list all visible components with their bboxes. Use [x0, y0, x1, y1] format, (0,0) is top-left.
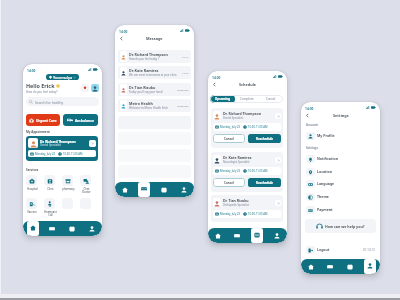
button[interactable]: Language [306, 179, 375, 188]
staticText: 10.00-11.00 AM [248, 212, 268, 216]
button[interactable]: Vaccine [26, 198, 37, 214]
staticText: Cancel [224, 181, 234, 185]
button[interactable]: Profile [174, 182, 194, 197]
staticText: Today you ll say your hand [129, 90, 163, 94]
button[interactable]: Complete [235, 95, 259, 103]
button[interactable]: Upcoming [210, 95, 235, 103]
staticText: My Appoinment [26, 130, 50, 134]
button[interactable]: Back [211, 81, 217, 87]
staticText: How can we help you? [325, 224, 365, 229]
staticText: Dental Specialist [40, 143, 61, 147]
staticText: Dr. Tian Rizuku [223, 198, 249, 203]
staticText: Hospital [27, 187, 38, 191]
button[interactable]: Schedule [340, 259, 360, 274]
button[interactable]: Dr. Richard Thompson [28, 138, 96, 159]
button[interactable]: Cancel [213, 178, 245, 187]
staticText: Settings [306, 146, 318, 150]
button[interactable]: Yosemulya [49, 74, 76, 80]
staticText: Urgent Care [36, 118, 57, 123]
staticText: Dr. Richard Thompson [223, 111, 261, 116]
button[interactable]: Reschedule [248, 134, 281, 143]
button[interactable]: How can we help you? [305, 219, 376, 233]
button[interactable]: Theme [306, 192, 375, 201]
button[interactable]: Messages [134, 182, 154, 197]
button[interactable]: Back [304, 112, 310, 118]
button[interactable]: Urgent Care [26, 114, 60, 126]
staticText: Services [26, 168, 39, 172]
button[interactable]: Homecare Call [44, 198, 55, 216]
button[interactable]: Profile [91, 84, 99, 92]
staticText: How do you feel today ? [129, 57, 160, 61]
staticText: Dental Specialist [223, 116, 244, 120]
button[interactable]: Dr. Tian Rizuku [120, 83, 189, 96]
staticText: My Profile [317, 133, 335, 138]
button[interactable]: Schedule [154, 182, 174, 197]
staticText: 14.23 [182, 71, 189, 74]
button[interactable]: Profile [360, 259, 380, 274]
button[interactable]: Clinic [44, 175, 55, 191]
staticText: Language [317, 181, 335, 186]
staticText: Location [317, 169, 333, 174]
button[interactable]: Cancel [259, 95, 283, 103]
button[interactable]: Ambulance [63, 114, 98, 126]
button[interactable]: Home [23, 221, 42, 236]
button[interactable]: Search for healthy [29, 97, 96, 106]
button[interactable]: Home [115, 182, 134, 197]
button[interactable]: Dr. Richard Thompson [120, 50, 189, 63]
button[interactable] [80, 198, 91, 214]
staticText: Search for healthy [35, 100, 64, 104]
button[interactable]: Cancel [213, 134, 245, 143]
button[interactable]: Home [301, 259, 320, 274]
button[interactable]: Reschedule [248, 178, 281, 187]
staticText: Schedule [239, 82, 257, 87]
button[interactable]: Payment [306, 205, 375, 214]
staticText: Account [306, 123, 318, 127]
staticText: Dr. Kate Ramirez [223, 155, 252, 160]
staticText: Yesterday [177, 104, 189, 107]
staticText: Monday, July 23 [220, 169, 241, 173]
button[interactable]: Profile [82, 221, 102, 236]
button[interactable]: Logout [306, 245, 375, 254]
button[interactable]: Home [208, 228, 227, 243]
staticText: 10.12 [182, 55, 189, 58]
staticText: V.1.1.0.12 [363, 248, 375, 252]
staticText: Cancel [266, 97, 276, 101]
staticText: Vaccine [27, 210, 37, 214]
staticText: pharmacy [62, 187, 75, 191]
button[interactable]: Location [306, 167, 375, 176]
button[interactable]: Messages [320, 259, 340, 274]
staticText: Ambulance [75, 118, 95, 123]
button[interactable] [62, 198, 73, 214]
staticText: Notification [317, 156, 338, 161]
staticText: Reschedule [256, 181, 274, 185]
button[interactable]: Schedule [247, 228, 267, 243]
staticText: 10.00-11.00 AM [248, 125, 268, 129]
button[interactable]: Messages [227, 228, 247, 243]
button[interactable]: pharmacy [62, 175, 73, 191]
staticText: 14:00 [212, 75, 221, 79]
button[interactable]: Metro Health [120, 99, 189, 112]
staticText: Dr. Richard Thompson [40, 139, 76, 143]
staticText: Cancel [224, 137, 234, 141]
button[interactable]: Hospital [26, 175, 37, 191]
staticText: 14:00 [27, 68, 36, 72]
button[interactable]: Notification [306, 154, 375, 163]
button[interactable]: Chat Doctor [80, 175, 91, 193]
button[interactable]: Notifications [81, 84, 89, 92]
button[interactable]: Schedule [62, 221, 82, 236]
staticText: Homecare Call [44, 210, 57, 216]
staticText: How do you feel today? [26, 90, 58, 94]
button[interactable]: Messages [42, 221, 62, 236]
staticText: Chat Doctor [82, 187, 91, 193]
button[interactable]: Profile [267, 228, 287, 243]
staticText: Monday, July 23 [220, 212, 241, 216]
staticText: Reschedule [256, 137, 274, 141]
button[interactable]: Back [118, 35, 124, 41]
staticText: Dr. Richard Thompson [129, 52, 168, 57]
button[interactable]: My Profile [306, 131, 375, 140]
button[interactable]: Dr. Kate Ramirez [120, 66, 189, 79]
